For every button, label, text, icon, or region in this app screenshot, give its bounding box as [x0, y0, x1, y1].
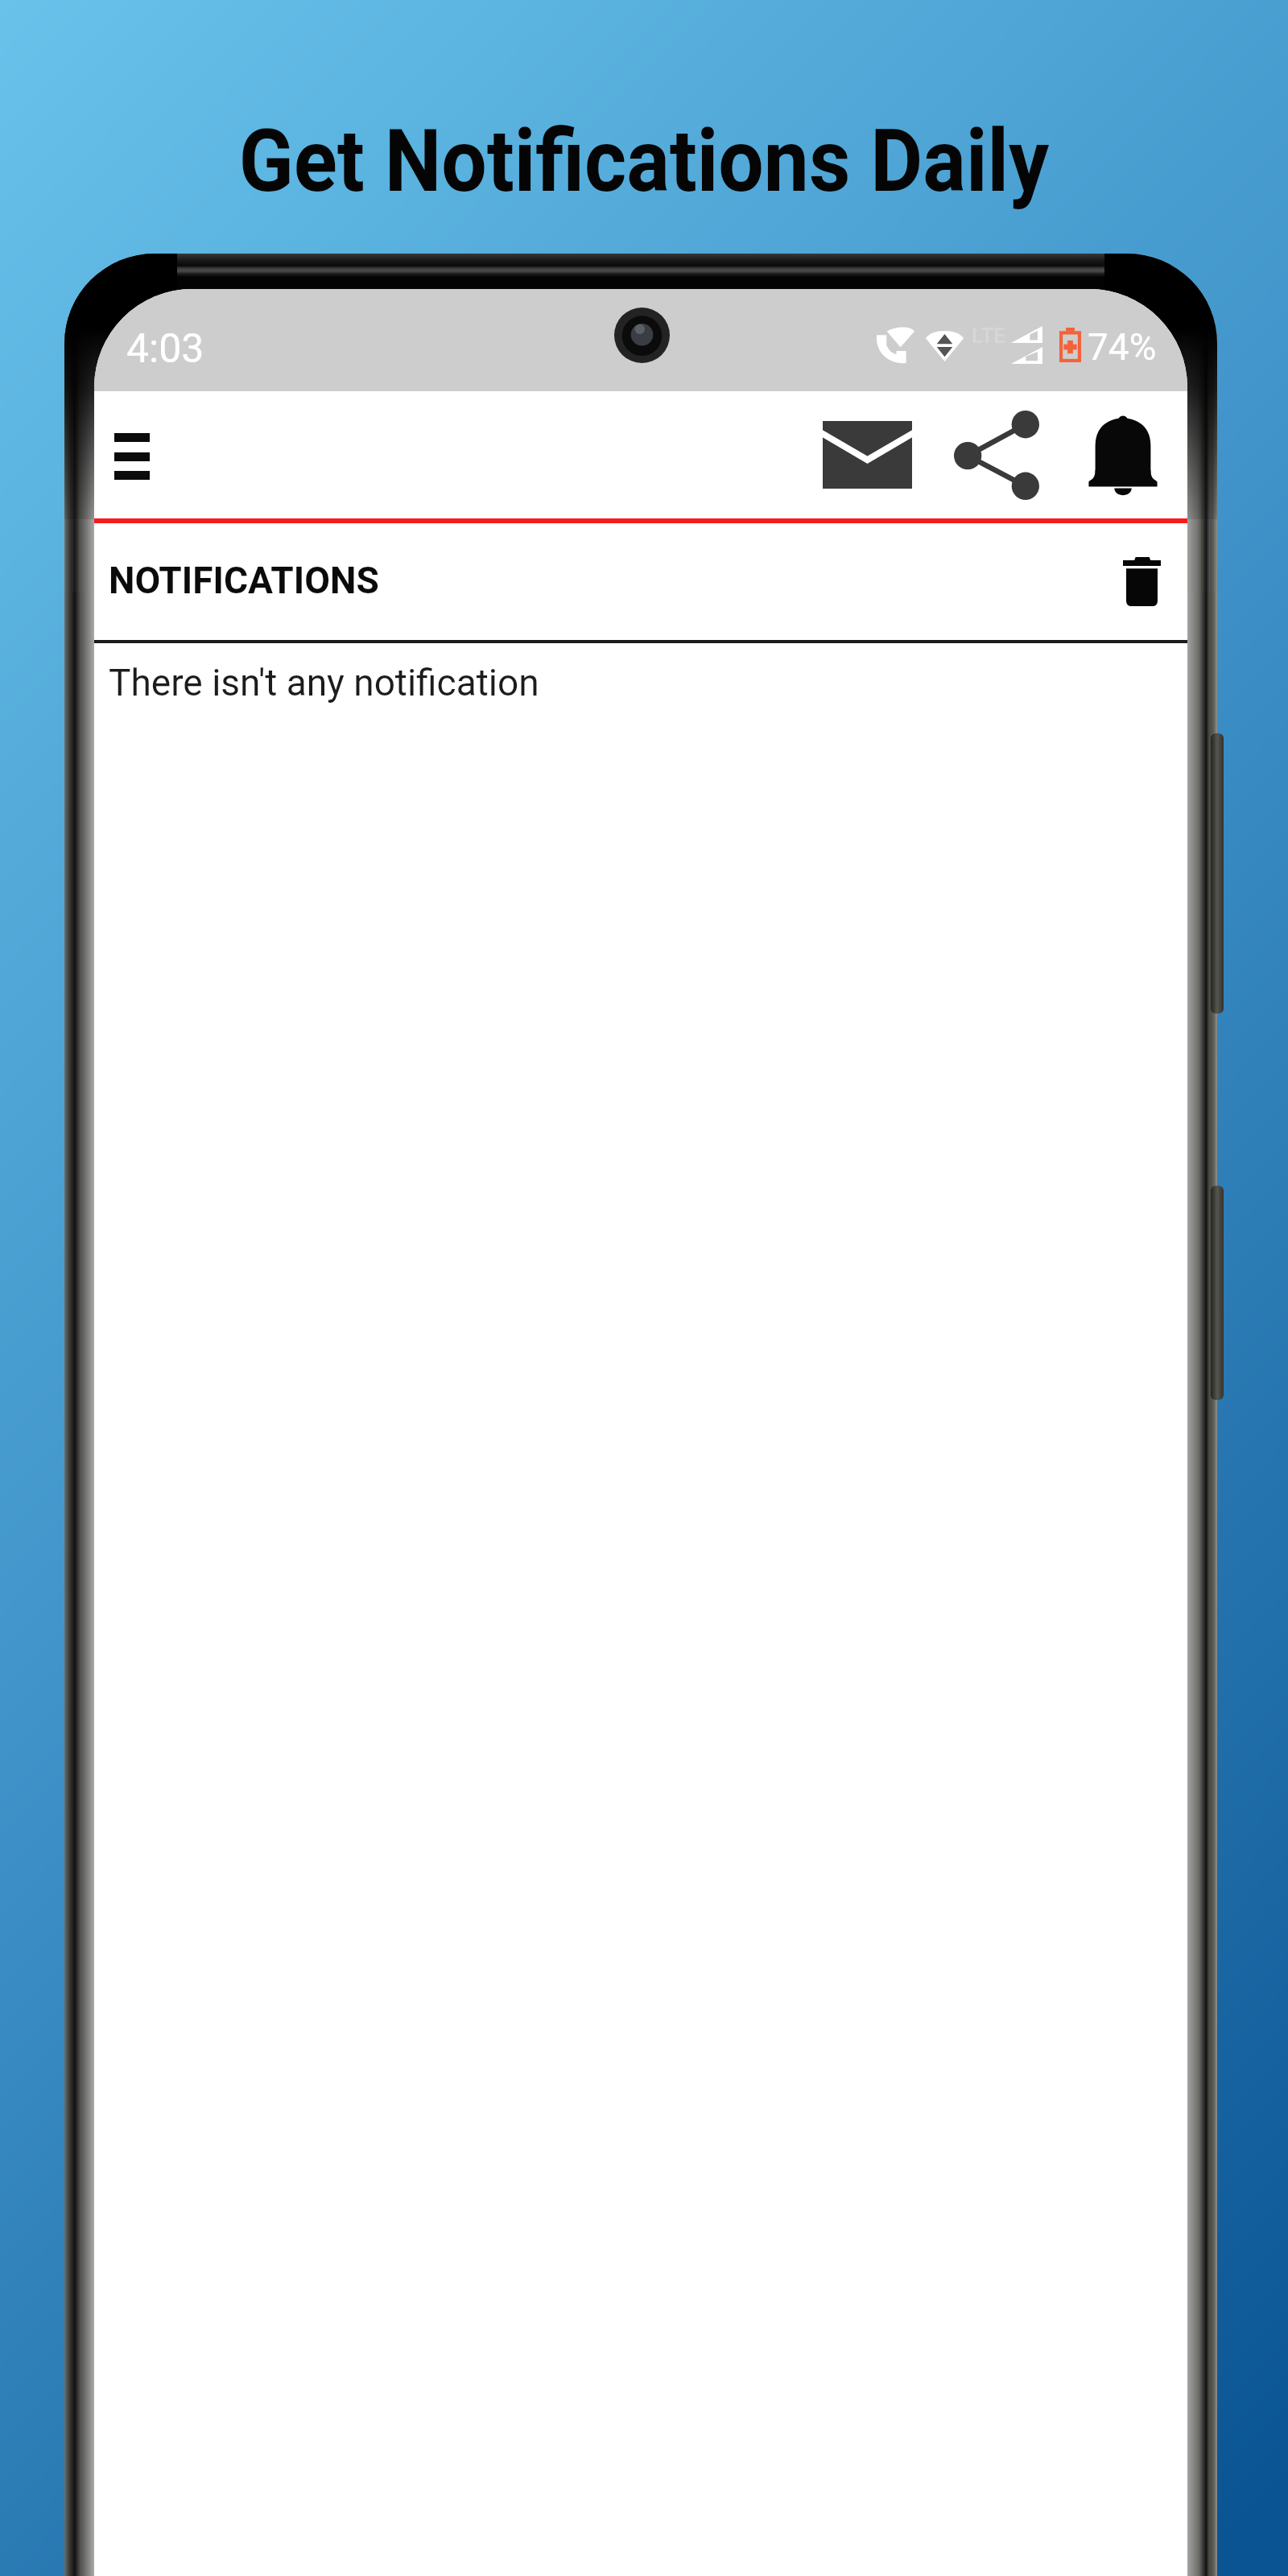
- staticText: 4:03: [126, 325, 204, 373]
- button[interactable]: Share: [917, 407, 1076, 503]
- staticText: 74%: [1088, 325, 1157, 369]
- staticText: There isn't any notification: [109, 661, 539, 704]
- button[interactable]: Open navigation menu: [114, 433, 150, 480]
- button[interactable]: Mail: [820, 407, 914, 503]
- staticText: NOTIFICATIONS: [109, 559, 379, 602]
- button[interactable]: Notifications: [1073, 401, 1173, 497]
- staticText: LTE: [972, 324, 1005, 348]
- button[interactable]: Clear all notifications: [1100, 539, 1183, 623]
- staticText: Get Notifications Daily: [42, 111, 1246, 212]
